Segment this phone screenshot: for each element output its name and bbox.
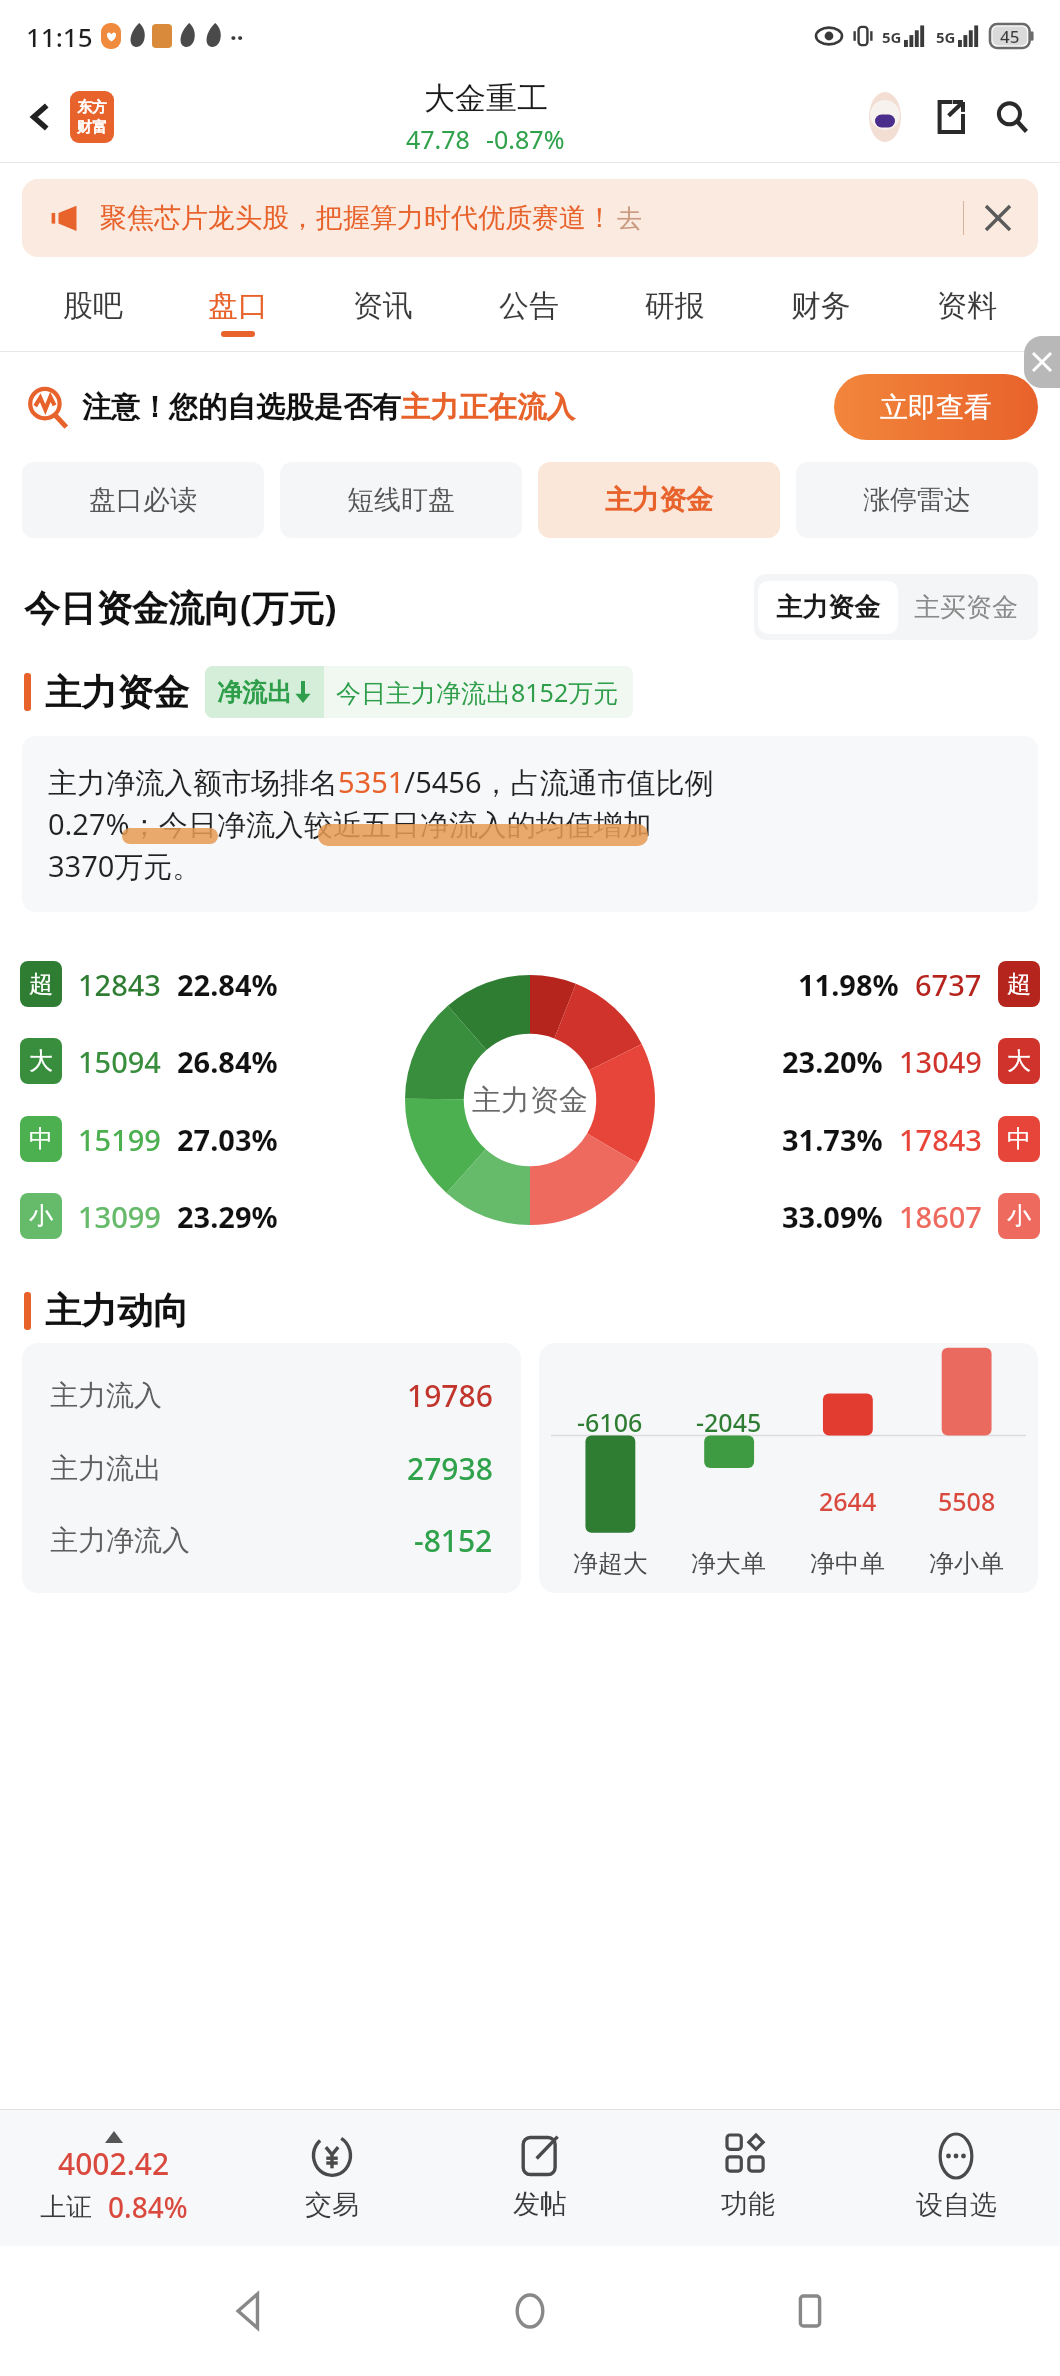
staticText: -8152 xyxy=(414,1520,493,1561)
button[interactable]: 财务 xyxy=(748,273,894,351)
button[interactable]: 功能 xyxy=(644,2110,852,2246)
button[interactable]: 聚焦芯片龙头股，把握算力时代优质赛道！ xyxy=(22,179,1038,257)
staticText: 2644 xyxy=(819,1484,877,1518)
staticText: 小 xyxy=(1007,1201,1031,1231)
staticText: 注意！您的自选股是否有主力正在流入 xyxy=(82,389,575,426)
staticText: -0.87% xyxy=(486,122,565,156)
staticText: 超 xyxy=(1007,969,1031,999)
staticText: 聚焦芯片龙头股，把握算力时代优质赛道！ xyxy=(100,201,613,235)
staticText: ·· xyxy=(230,20,244,53)
staticText: 17843 xyxy=(899,1120,982,1159)
button[interactable]: Home xyxy=(500,2281,560,2341)
staticText: 0.27%；今日净流入较近五日净流入的均值增加 xyxy=(48,804,652,844)
button[interactable]: 主买资金 xyxy=(898,581,1034,634)
staticText: 15094 xyxy=(78,1042,161,1081)
staticText: 27.03% xyxy=(177,1120,278,1159)
staticText: 中 xyxy=(1007,1124,1031,1154)
staticText: 今日主力净流出8152万元 xyxy=(336,675,619,709)
staticText: 超 xyxy=(29,969,53,999)
staticText: 公告 xyxy=(499,287,559,325)
staticText: 主力动向 xyxy=(45,1288,189,1333)
staticText: 上证 xyxy=(40,2191,92,2224)
staticText: 5G xyxy=(882,27,902,47)
staticText: 净小单 xyxy=(929,1548,1004,1579)
staticText: 主力资金 xyxy=(472,1082,588,1119)
staticText: 26.84% xyxy=(177,1042,278,1081)
staticText: 盘口必读 xyxy=(89,483,197,517)
button[interactable]: Share xyxy=(922,91,974,143)
staticText: 13049 xyxy=(899,1042,982,1081)
staticText: 东方 xyxy=(77,98,107,117)
button[interactable]: 盘口 xyxy=(165,273,310,351)
button[interactable]: 盘口必读 xyxy=(22,462,264,538)
staticText: 23.20% xyxy=(782,1042,883,1081)
staticText: 盘口 xyxy=(208,287,268,325)
button[interactable]: 设自选 xyxy=(852,2110,1060,2246)
button[interactable]: 发帖 xyxy=(436,2110,644,2246)
staticText: 主力资金 xyxy=(776,591,880,624)
staticText: 股吧 xyxy=(63,287,123,325)
staticText: -6106 xyxy=(577,1405,643,1439)
button[interactable]: Back xyxy=(18,94,64,140)
staticText: 净大单 xyxy=(691,1548,766,1579)
button[interactable]: 主力资金 xyxy=(538,462,780,538)
staticText: 5G xyxy=(936,27,956,47)
staticText: 23.29% xyxy=(177,1197,278,1236)
button[interactable]: 资料 xyxy=(894,273,1040,351)
staticText: 功能 xyxy=(721,2187,775,2221)
staticText: 财富 xyxy=(77,118,107,137)
staticText: 12843 xyxy=(78,965,161,1004)
staticText: 11.98% xyxy=(798,965,899,1004)
staticText: 资料 xyxy=(937,287,997,325)
staticText: 主力净流入额市场排名5351/5456，占流通市值比例 xyxy=(48,762,714,802)
staticText: 主力资金 xyxy=(605,483,713,517)
button[interactable]: 股吧 xyxy=(20,273,165,351)
staticText: 大 xyxy=(1007,1046,1031,1076)
staticText: 中 xyxy=(29,1124,53,1154)
staticText: 主买资金 xyxy=(914,591,1018,624)
staticText: 4002.42 xyxy=(58,2143,170,2184)
button[interactable]: 资讯 xyxy=(310,273,456,351)
button[interactable]: 交易 xyxy=(228,2110,436,2246)
staticText: 今日资金流向(万元) xyxy=(24,583,337,632)
button[interactable]: 4002.42 xyxy=(0,2110,228,2246)
staticText: -2045 xyxy=(696,1405,762,1439)
staticText: 去 xyxy=(617,203,642,234)
button[interactable]: Dismiss xyxy=(1024,336,1060,388)
staticText: 6737 xyxy=(915,965,982,1004)
staticText: 31.73% xyxy=(782,1120,883,1159)
staticText: 财务 xyxy=(791,287,851,325)
staticText: 立即查看 xyxy=(880,390,992,425)
staticText: 大金重工 xyxy=(424,79,548,118)
button[interactable]: AI Assistant xyxy=(858,90,912,144)
staticText: 3370万元。 xyxy=(48,846,202,886)
staticText: 5508 xyxy=(938,1484,996,1518)
staticText: 18607 xyxy=(899,1197,982,1236)
staticText: 主力净流入 xyxy=(50,1523,190,1558)
staticText: 资讯 xyxy=(353,287,413,325)
button[interactable]: Recents xyxy=(780,2281,840,2341)
staticText: 净中单 xyxy=(810,1548,885,1579)
button[interactable]: 公告 xyxy=(456,273,602,351)
staticText: 22.84% xyxy=(177,965,278,1004)
button[interactable]: 立即查看 xyxy=(834,374,1038,440)
button[interactable]: 短线盯盘 xyxy=(280,462,522,538)
button[interactable]: Close xyxy=(980,200,1016,236)
button[interactable]: 东方财富 xyxy=(70,91,114,143)
staticText: 主力资金 xyxy=(45,670,189,715)
button[interactable]: Back xyxy=(220,2281,280,2341)
staticText: 涨停雷达 xyxy=(863,483,971,517)
staticText: 主力流入 xyxy=(50,1378,162,1413)
staticText: 小 xyxy=(29,1201,53,1231)
button[interactable]: 主力资金 xyxy=(758,581,898,634)
staticText: 47.78 xyxy=(406,122,470,156)
staticText: 净超大 xyxy=(573,1548,648,1579)
button[interactable]: 涨停雷达 xyxy=(796,462,1038,538)
staticText: 主力流出 xyxy=(50,1451,162,1486)
button[interactable]: 研报 xyxy=(602,273,748,351)
button[interactable]: Search xyxy=(986,91,1038,143)
staticText: 设自选 xyxy=(916,2188,997,2222)
staticText: 发帖 xyxy=(513,2187,567,2221)
staticText: 11:15 xyxy=(26,19,93,54)
staticText: 交易 xyxy=(305,2188,359,2222)
